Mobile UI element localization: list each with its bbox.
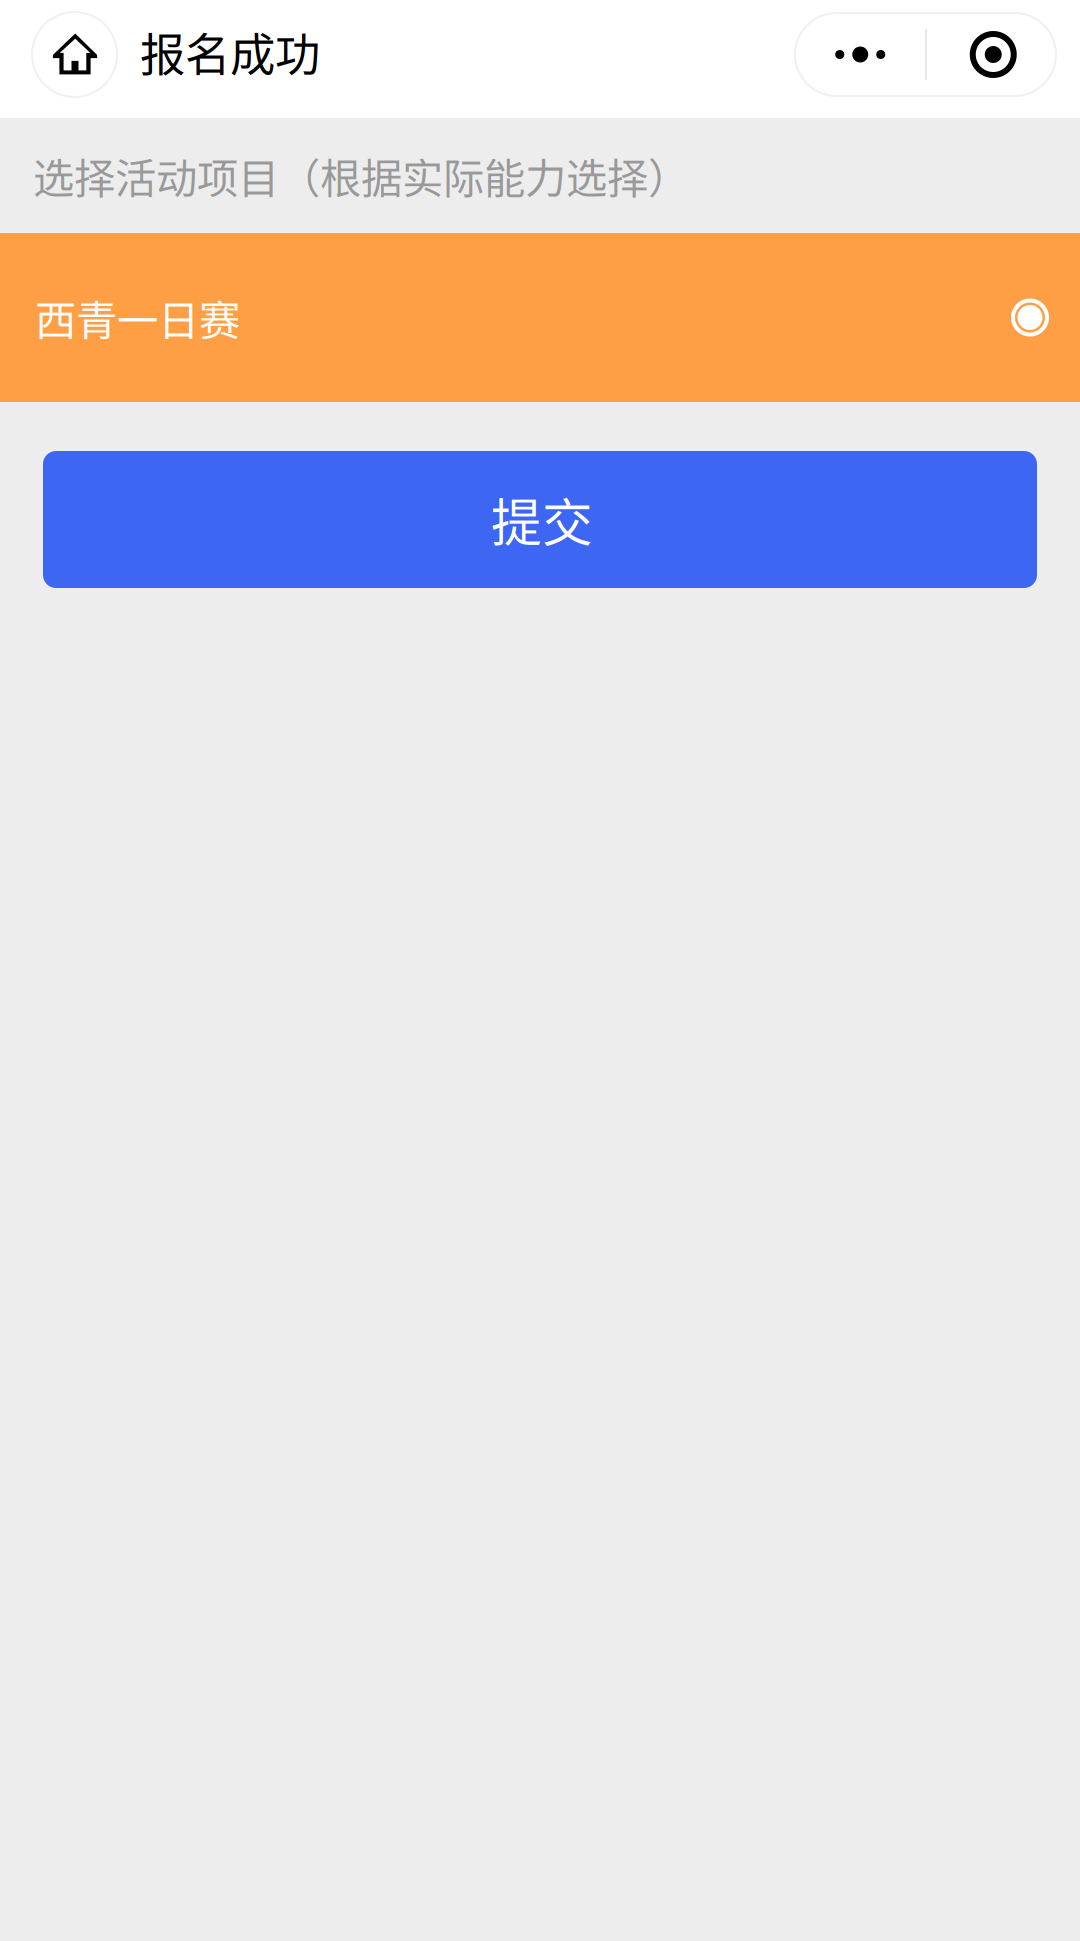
button[interactable]: Close Mini Program	[927, 13, 1056, 96]
staticText: 提交	[491, 483, 593, 556]
staticText: 西青一日赛	[35, 288, 240, 347]
staticText: 选择活动项目（根据实际能力选择）	[33, 146, 689, 205]
button[interactable]: More	[795, 13, 925, 96]
button[interactable]: 提交	[43, 451, 1037, 588]
staticText: 报名成功	[140, 19, 320, 85]
button[interactable]: Home	[32, 12, 117, 97]
button[interactable]: 西青一日赛	[0, 233, 1080, 402]
